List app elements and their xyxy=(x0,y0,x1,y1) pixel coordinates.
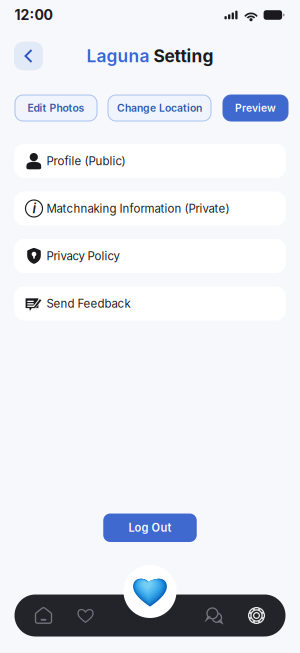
button[interactable]: Likes xyxy=(64,594,106,636)
button[interactable]: i xyxy=(14,191,286,225)
button[interactable]: Back xyxy=(14,42,43,70)
button[interactable]: Edit Photos xyxy=(15,95,97,121)
button[interactable]: Send Feedback xyxy=(14,286,286,320)
button[interactable]: Log Out xyxy=(103,513,197,542)
button[interactable]: Privacy Policy xyxy=(14,239,286,273)
staticText: Profile (Public) xyxy=(46,154,125,168)
button[interactable]: Change Location xyxy=(108,95,211,121)
staticText: Edit Photos xyxy=(27,102,84,114)
staticText: Matchnaking Information (Private) xyxy=(46,202,229,215)
staticText: i xyxy=(32,200,35,216)
button[interactable]: Settings xyxy=(235,594,277,636)
button[interactable]: Home xyxy=(22,594,64,636)
staticText: Send Feedback xyxy=(46,297,130,310)
staticText: 12:00 xyxy=(14,6,52,23)
staticText: Privacy Policy xyxy=(46,249,119,263)
button[interactable]: Messages xyxy=(193,594,235,636)
staticText: Log Out xyxy=(128,521,171,534)
staticText: Preview xyxy=(235,102,276,114)
button[interactable]: Preview xyxy=(223,95,288,121)
button[interactable]: Profile (Public) xyxy=(14,144,286,178)
staticText: Setting xyxy=(153,45,213,66)
staticText: Change Location xyxy=(117,102,202,114)
staticText: Laguna xyxy=(86,45,153,66)
